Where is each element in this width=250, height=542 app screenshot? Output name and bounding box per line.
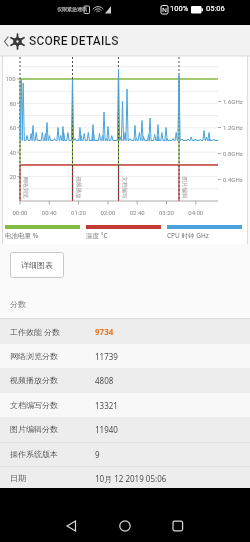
staticText: 分数: [10, 299, 26, 309]
staticText: SCORE DETAILS: [29, 34, 119, 48]
staticText: 05:06: [206, 4, 225, 13]
staticText: 100%: [170, 4, 189, 13]
staticText: 操作系统版本: [10, 449, 58, 459]
staticText: 图片编辑分数: [10, 424, 58, 434]
staticText: 日期: [10, 473, 26, 483]
staticText: 详细图表: [21, 260, 53, 270]
staticText: 11739: [95, 351, 118, 362]
staticText: 文档编写分数: [10, 400, 58, 410]
button[interactable]: [0, 25, 30, 56]
button[interactable]: [163, 511, 193, 541]
staticText: 仅限紧急通话: [57, 6, 87, 12]
button[interactable]: [110, 511, 140, 541]
staticText: 4808: [95, 375, 114, 386]
staticText: 10月 12 2019 05:06: [95, 473, 167, 484]
staticText: 网络浏览分数: [10, 351, 58, 361]
staticText: 工作效能 分数: [10, 326, 61, 337]
staticText: 11940: [95, 424, 118, 435]
staticText: 13321: [95, 400, 118, 411]
staticText: 视频播放分数: [10, 375, 58, 385]
button[interactable]: [56, 511, 86, 541]
staticText: 9734: [95, 326, 114, 337]
button[interactable]: 详细图表: [10, 252, 64, 278]
staticText: 9: [95, 449, 100, 460]
